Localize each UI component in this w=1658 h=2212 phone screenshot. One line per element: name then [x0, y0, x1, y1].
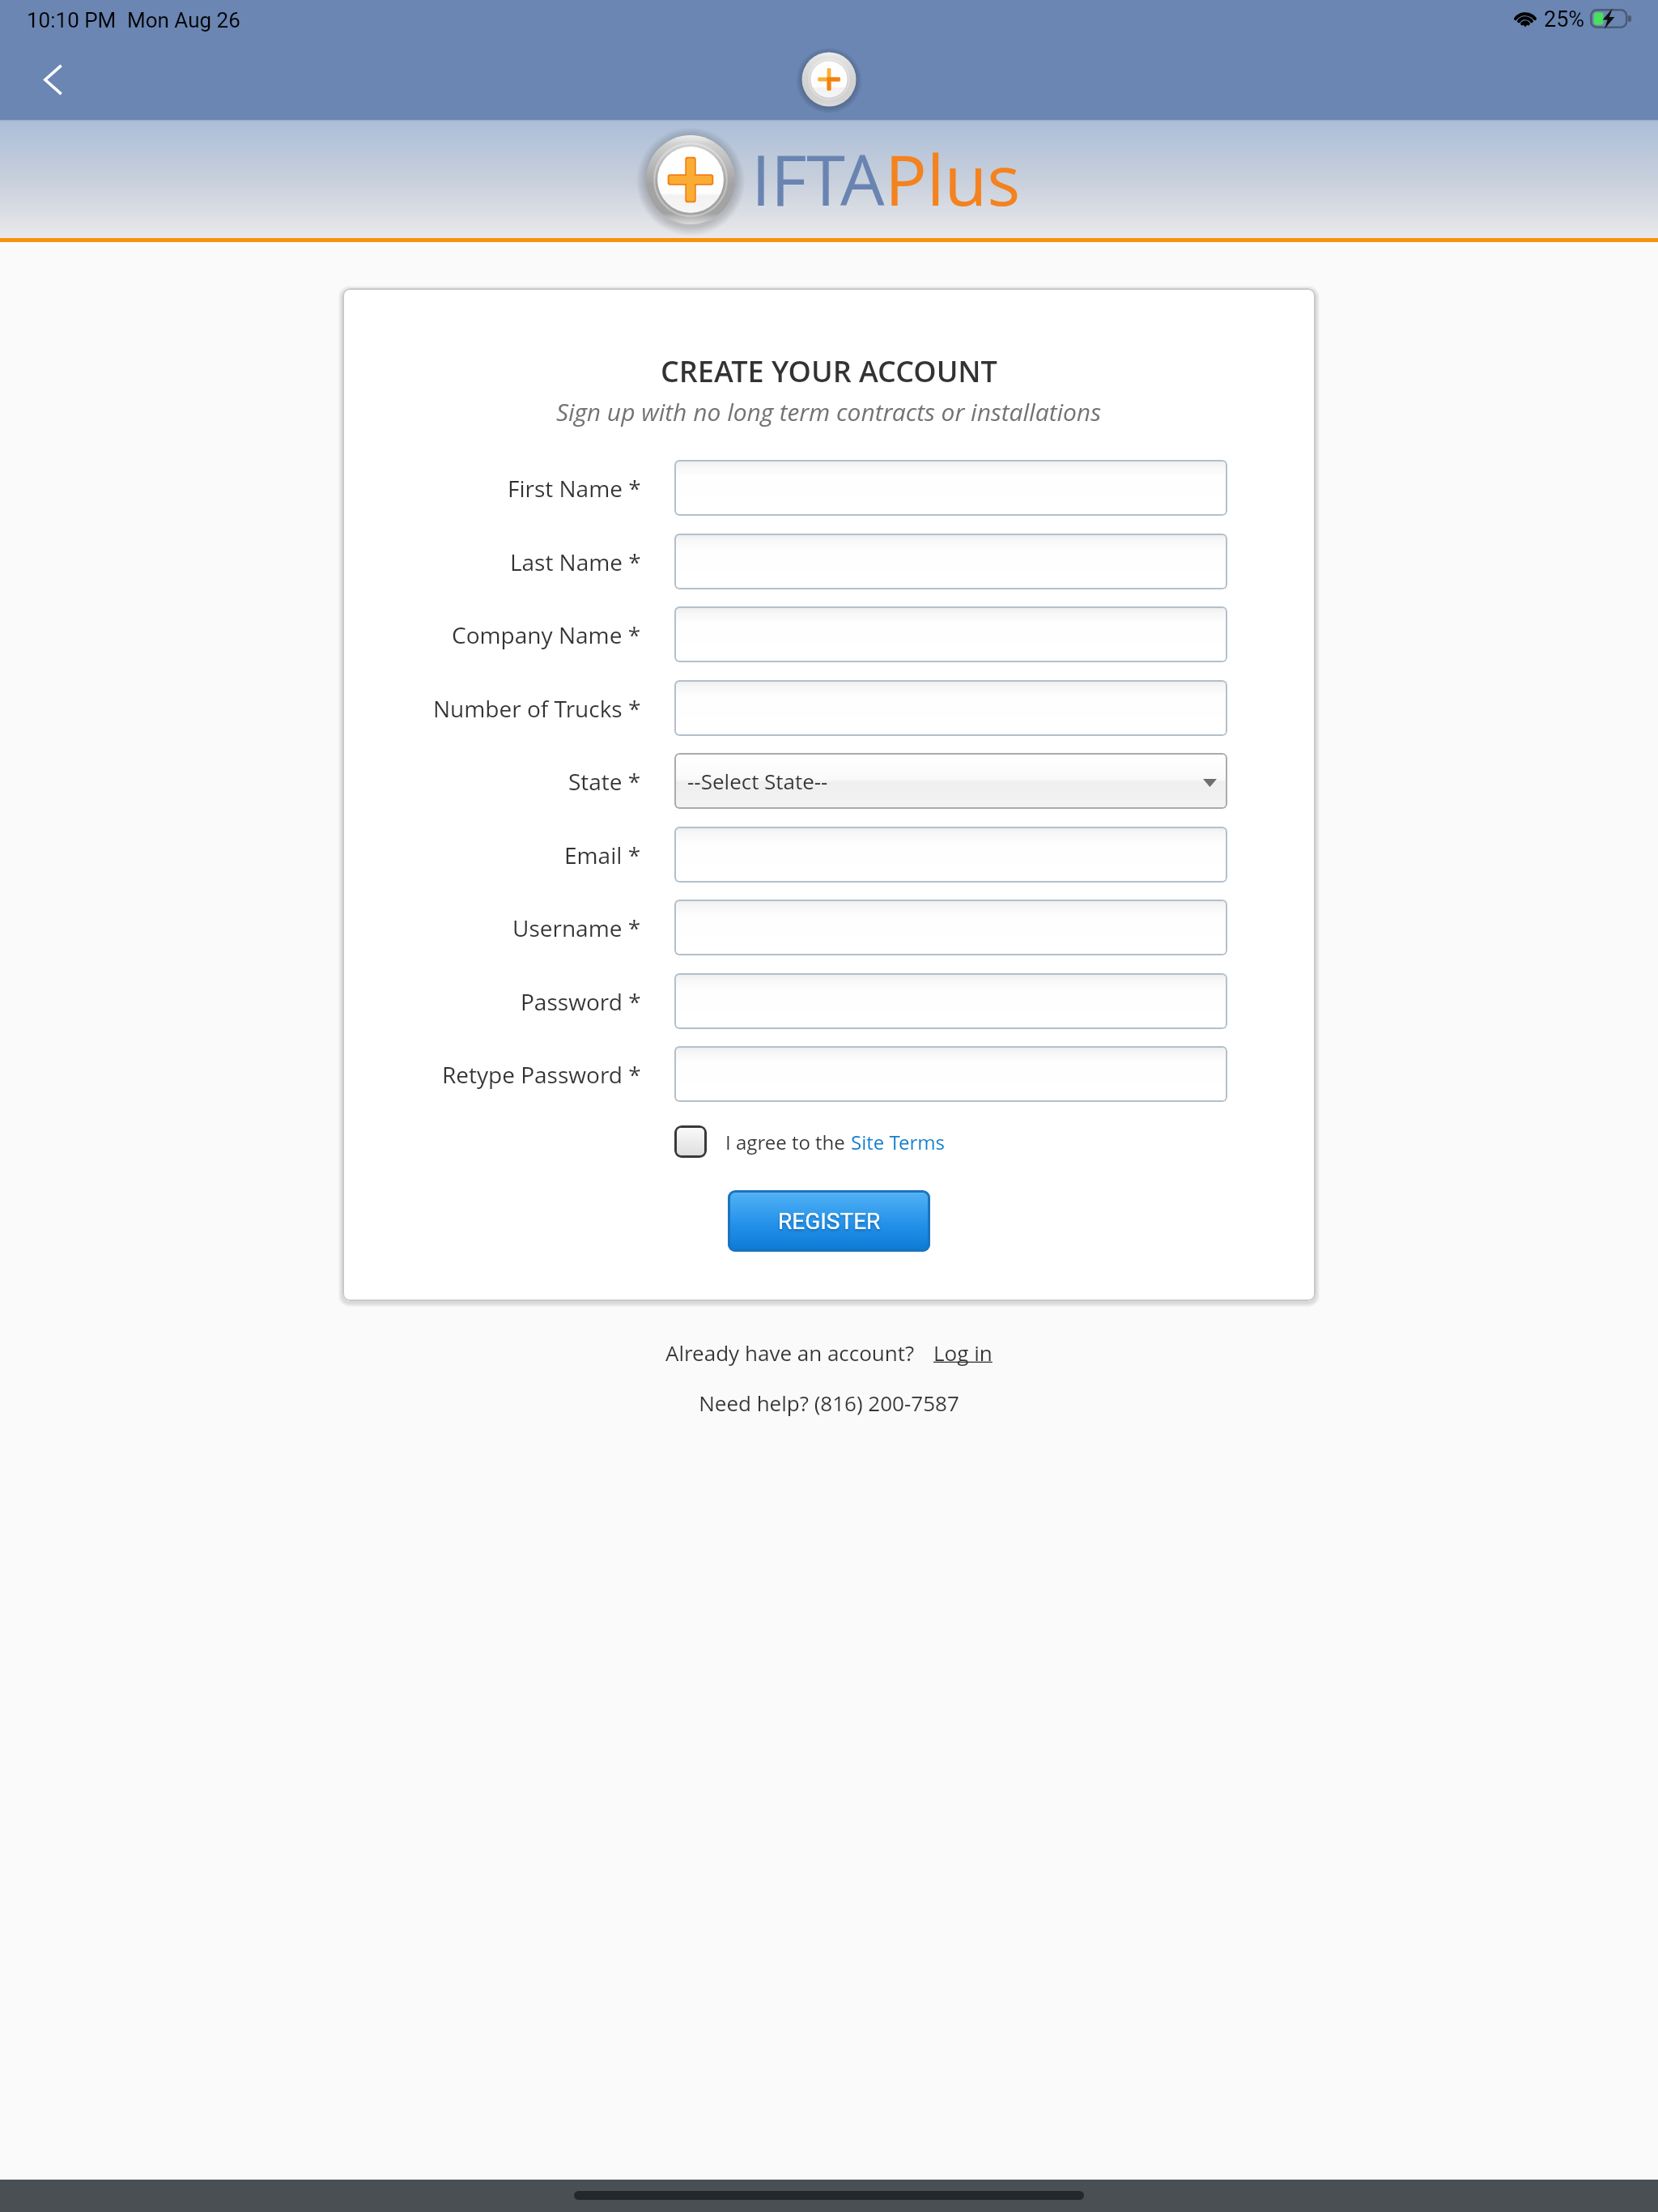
staticText: CREATE YOUR ACCOUNT [661, 351, 997, 391]
button[interactable]: Back [17, 44, 88, 115]
staticText: Log in [933, 1338, 993, 1367]
staticText: Number of Trucks * [433, 693, 641, 724]
button[interactable] [674, 680, 1227, 736]
staticText: --Select State-- [687, 767, 828, 795]
button[interactable] [674, 900, 1227, 955]
button[interactable] [674, 460, 1227, 516]
staticText: Sign up with no long term contracts or i… [556, 395, 1102, 428]
staticText: Need help? (816) 200-7587 [699, 1389, 959, 1417]
staticText: Company Name * [452, 619, 641, 650]
button[interactable]: I agree to the Site Terms [674, 1125, 707, 1158]
staticText: Password * [521, 986, 641, 1017]
button[interactable] [674, 973, 1227, 1029]
staticText: Mon Aug 26 [127, 8, 240, 32]
staticText: Site Terms [851, 1129, 946, 1155]
staticText: 25% [1544, 6, 1585, 32]
other: Wi-Fi [1513, 9, 1537, 28]
button[interactable]: Log in [933, 1338, 993, 1367]
staticText: Email * [564, 840, 641, 870]
button[interactable] [674, 827, 1227, 883]
staticText: State * [568, 766, 641, 797]
button[interactable]: REGISTER [728, 1190, 930, 1252]
button[interactable] [674, 1046, 1227, 1102]
button[interactable]: --Select State-- [674, 753, 1227, 809]
button[interactable] [674, 606, 1227, 662]
staticText: REGISTER [778, 1208, 881, 1235]
button[interactable]: Site Terms [851, 1129, 946, 1155]
staticText: First Name * [508, 473, 641, 504]
staticText: 10:10 PM [27, 8, 117, 32]
staticText: Already have an account? [665, 1338, 915, 1367]
button[interactable] [674, 534, 1227, 589]
staticText: Last Name * [510, 547, 641, 577]
staticText: Retype Password * [442, 1059, 641, 1090]
staticText: I agree to the [725, 1129, 851, 1155]
staticText: IFTA [751, 131, 885, 226]
other: Battery 25 percent charging [1590, 9, 1634, 28]
staticText: Username * [512, 912, 641, 943]
staticText: Plus [885, 131, 1021, 226]
